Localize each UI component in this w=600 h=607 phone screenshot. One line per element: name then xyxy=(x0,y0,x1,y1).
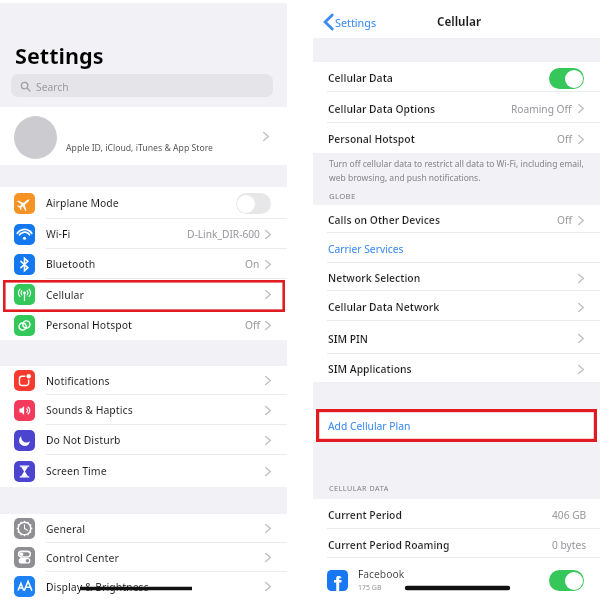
button[interactable]: Control Center xyxy=(0,543,287,572)
button[interactable]: Cellular xyxy=(0,279,287,310)
staticText: Screen Time xyxy=(46,464,107,478)
button[interactable]: SIM Applications xyxy=(313,354,600,382)
staticText: Cellular Data Options xyxy=(328,102,436,116)
staticText: Current Period Roaming xyxy=(328,538,450,552)
button[interactable]: Facebook xyxy=(313,558,600,607)
button[interactable]: Add Cellular Plan xyxy=(313,410,600,440)
staticText: Airplane Mode xyxy=(46,196,119,210)
staticText: Display & Brightness xyxy=(46,580,149,594)
button[interactable]: Back to Settings xyxy=(324,14,377,30)
staticText: Add Cellular Plan xyxy=(328,419,411,433)
staticText: 0 bytes xyxy=(552,538,587,552)
button[interactable]: Wi-Fi xyxy=(0,219,287,249)
button[interactable]: Sounds & Haptics xyxy=(0,395,287,425)
staticText: Facebook xyxy=(358,567,405,581)
button[interactable]: Network Selection xyxy=(313,263,600,291)
button[interactable]: Display & Brightness xyxy=(0,572,287,601)
staticText: Control Center xyxy=(46,551,119,565)
staticText: On xyxy=(245,257,260,271)
button[interactable]: Toggle xyxy=(236,193,271,214)
staticText: Off xyxy=(557,213,572,227)
button[interactable]: Toggle xyxy=(549,570,584,591)
button[interactable]: Screen Time xyxy=(0,455,287,487)
button[interactable]: Current Period xyxy=(313,499,600,529)
staticText: web browsing, and push notifications. xyxy=(329,172,481,184)
button[interactable]: Cellular Data Network xyxy=(313,291,600,321)
staticText: Carrier Services xyxy=(328,242,404,256)
button[interactable]: General xyxy=(0,514,287,543)
staticText: General xyxy=(46,522,85,536)
button[interactable]: Do Not Disturb xyxy=(0,425,287,455)
staticText: Notifications xyxy=(46,374,110,388)
staticText: Cellular xyxy=(437,14,482,30)
staticText: Cellular Data xyxy=(328,71,393,85)
staticText: SIM Applications xyxy=(328,362,412,376)
button[interactable]: SIM PIN xyxy=(313,321,600,354)
staticText: D-Link_DIR-600 xyxy=(187,227,260,241)
staticText: Apple ID, iCloud, iTunes & App Store xyxy=(66,142,213,154)
button[interactable]: Notifications xyxy=(0,366,287,395)
button[interactable]: Current Period Roaming xyxy=(313,529,600,558)
staticText: Personal Hotspot xyxy=(328,132,415,146)
staticText: Search xyxy=(36,80,69,94)
button[interactable]: Apple ID, iCloud, iTunes & App Store xyxy=(0,107,287,165)
button[interactable]: Bluetooth xyxy=(0,249,287,279)
staticText: Settings xyxy=(335,15,377,30)
button[interactable]: Cellular Data xyxy=(313,62,600,92)
staticText: Network Selection xyxy=(328,271,421,285)
staticText: Settings xyxy=(15,41,104,70)
staticText: Current Period xyxy=(328,508,402,522)
staticText: SIM PIN xyxy=(328,332,369,346)
button[interactable]: Search xyxy=(11,74,273,97)
staticText: Cellular xyxy=(46,288,84,302)
button[interactable]: Personal Hotspot xyxy=(0,310,287,340)
button[interactable]: Airplane Mode xyxy=(0,187,287,219)
staticText: Cellular Data Network xyxy=(328,300,440,314)
staticText: 175 GB xyxy=(358,583,382,593)
staticText: Calls on Other Devices xyxy=(328,213,440,227)
staticText: Off xyxy=(245,318,260,332)
staticText: Personal Hotspot xyxy=(46,318,132,332)
staticText: Do Not Disturb xyxy=(46,433,121,447)
staticText: 406 GB xyxy=(552,508,587,522)
button[interactable]: Cellular Data Options xyxy=(313,92,600,123)
staticText: Turn off cellular data to restrict all d… xyxy=(329,158,584,170)
button[interactable]: Toggle xyxy=(549,68,584,89)
staticText: GLOBE xyxy=(329,191,356,202)
staticText: Roaming Off xyxy=(511,102,572,116)
staticText: Sounds & Haptics xyxy=(46,403,133,417)
staticText: Wi-Fi xyxy=(46,227,71,241)
staticText: CELLULAR DATA xyxy=(329,483,389,493)
staticText: Off xyxy=(557,132,572,146)
staticText: Bluetooth xyxy=(46,257,96,271)
button[interactable]: Personal Hotspot xyxy=(313,123,600,153)
button[interactable]: Carrier Services xyxy=(313,233,600,263)
button[interactable]: Calls on Other Devices xyxy=(313,205,600,233)
